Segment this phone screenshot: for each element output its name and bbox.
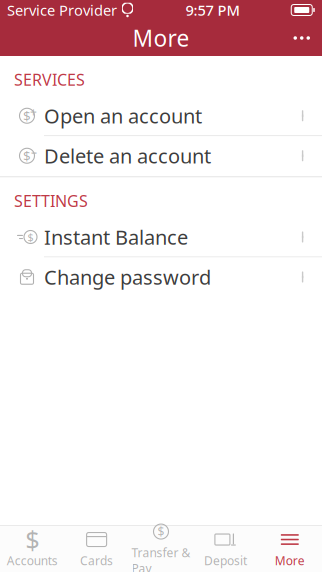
button[interactable]: Cards [64,526,129,572]
button[interactable]: Change password [0,257,322,297]
button[interactable]: More options [281,20,322,56]
staticText: Change password [44,264,211,290]
staticText: Deposit [204,552,247,568]
staticText: Transfer & Pay [131,545,190,572]
staticText: $ [157,524,164,539]
staticText: SETTINGS [14,190,88,211]
button[interactable]: $ [0,96,322,136]
staticText: Delete an account [44,142,211,169]
button[interactable]: More [258,526,322,572]
button[interactable]: $ [0,217,322,257]
staticText: More [132,23,189,53]
staticText: + [30,104,37,120]
button[interactable]: Terms & conditions [0,500,322,540]
staticText: SERVICES [14,69,85,90]
staticText: $ [27,230,33,244]
staticText: More [275,552,305,568]
staticText: Service Provider [7,0,117,20]
button[interactable]: $ [129,526,193,572]
staticText: Terms & conditions [44,506,224,533]
staticText: Instant Balance [44,224,188,250]
staticText: Accounts [7,552,58,568]
staticText: Cards [80,552,113,568]
staticText: $ [23,147,31,165]
staticText: $ [25,523,39,556]
staticText: – [31,144,37,160]
button[interactable]: Deposit [193,526,258,572]
button[interactable]: $ [0,526,64,572]
staticText: Open an account [44,102,202,129]
staticText: 9:57 PM [185,0,239,20]
staticText: $ [23,107,31,125]
button[interactable]: $ [0,136,322,176]
